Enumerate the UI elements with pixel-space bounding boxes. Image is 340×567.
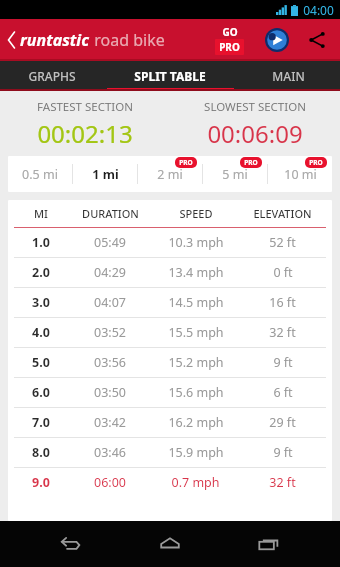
button[interactable]: 1.0 <box>8 228 332 257</box>
button[interactable]: 3.0 <box>8 288 332 317</box>
staticText: SPLIT TABLE <box>134 68 206 84</box>
staticText: 03:46 <box>94 444 126 461</box>
staticText: 13.4 mph <box>168 264 224 281</box>
button[interactable]: Share <box>302 25 332 55</box>
staticText: 03:50 <box>94 384 126 401</box>
staticText: 16.2 mph <box>168 414 224 431</box>
button[interactable]: runtastic <box>5 29 167 51</box>
staticText: 32 ft <box>269 474 296 491</box>
staticText: runtastic <box>20 29 89 51</box>
staticText: 04:00 <box>303 2 334 18</box>
staticText: GO <box>222 25 238 39</box>
staticText: 0 ft <box>273 264 293 281</box>
button[interactable]: 2.0 <box>8 258 332 287</box>
staticText: 00:06:09 <box>207 117 303 150</box>
staticText: 8.0 <box>32 444 50 461</box>
staticText: 15.2 mph <box>168 354 224 371</box>
staticText: 3.0 <box>32 294 50 311</box>
staticText: MI <box>34 206 48 221</box>
staticText: ELEVATION <box>253 206 312 221</box>
staticText: 1 mi <box>92 166 119 183</box>
button[interactable]: GRAPHS <box>0 61 104 91</box>
button[interactable]: GO <box>211 23 248 57</box>
staticText: 6.0 <box>32 384 50 401</box>
staticText: 4.0 <box>32 324 50 341</box>
staticText: PRO <box>244 158 258 167</box>
staticText: PRO <box>219 40 240 54</box>
button[interactable]: 8.0 <box>8 438 332 467</box>
staticText: PRO <box>309 158 323 167</box>
staticText: 03:56 <box>94 354 126 371</box>
button[interactable]: 1 mi <box>73 156 137 192</box>
button[interactable]: MAIN <box>236 61 340 91</box>
staticText: PRO <box>179 158 193 167</box>
staticText: 2.0 <box>32 264 50 281</box>
staticText: 0.7 mph <box>171 474 220 491</box>
staticText: 6 ft <box>273 384 293 401</box>
button[interactable]: SPLIT TABLE <box>104 61 236 91</box>
staticText: 9.0 <box>32 474 50 491</box>
button[interactable]: 6.0 <box>8 378 332 407</box>
staticText: 10 mi <box>284 166 317 183</box>
staticText: 16 ft <box>269 294 296 311</box>
staticText: 15.5 mph <box>168 324 224 341</box>
staticText: MAIN <box>272 68 305 84</box>
staticText: 0.5 mi <box>22 166 58 183</box>
staticText: 32 ft <box>269 324 296 341</box>
staticText: 06:00 <box>94 474 126 491</box>
button[interactable]: Home <box>142 524 198 564</box>
staticText: 15.9 mph <box>168 444 224 461</box>
staticText: GRAPHS <box>28 68 76 84</box>
button[interactable]: 0.5 mi <box>8 156 72 192</box>
staticText: road bike <box>94 29 165 51</box>
button[interactable]: 9.0 <box>8 468 332 497</box>
staticText: SPEED <box>179 206 213 221</box>
staticText: 04:29 <box>94 264 126 281</box>
button[interactable]: Recent apps <box>241 524 297 564</box>
staticText: 10.3 mph <box>168 234 224 251</box>
staticText: 5.0 <box>32 354 50 371</box>
staticText: 14.5 mph <box>168 294 224 311</box>
staticText: 29 ft <box>269 414 296 431</box>
button[interactable]: Back <box>43 524 99 564</box>
staticText: 2 mi <box>157 166 183 183</box>
staticText: 9 ft <box>273 444 293 461</box>
staticText: 5 mi <box>222 166 248 183</box>
button[interactable]: 5.0 <box>8 348 332 377</box>
staticText: FASTEST SECTION <box>37 99 133 115</box>
staticText: 04:07 <box>94 294 126 311</box>
staticText: 1.0 <box>32 234 50 251</box>
staticText: DURATION <box>82 206 139 221</box>
button[interactable]: 2 mi <box>138 156 202 192</box>
staticText: 03:52 <box>94 324 126 341</box>
staticText: SLOWEST SECTION <box>204 99 306 115</box>
button[interactable]: 10 mi <box>268 156 332 192</box>
button[interactable]: 7.0 <box>8 408 332 437</box>
staticText: 15.6 mph <box>168 384 224 401</box>
button[interactable]: Runtastic apps <box>262 25 292 55</box>
staticText: 03:42 <box>94 414 126 431</box>
staticText: 52 ft <box>269 234 296 251</box>
button[interactable]: 4.0 <box>8 318 332 347</box>
staticText: 05:49 <box>94 234 126 251</box>
staticText: 9 ft <box>273 354 293 371</box>
button[interactable]: 5 mi <box>203 156 267 192</box>
staticText: 00:02:13 <box>37 117 133 150</box>
staticText: 7.0 <box>32 414 50 431</box>
